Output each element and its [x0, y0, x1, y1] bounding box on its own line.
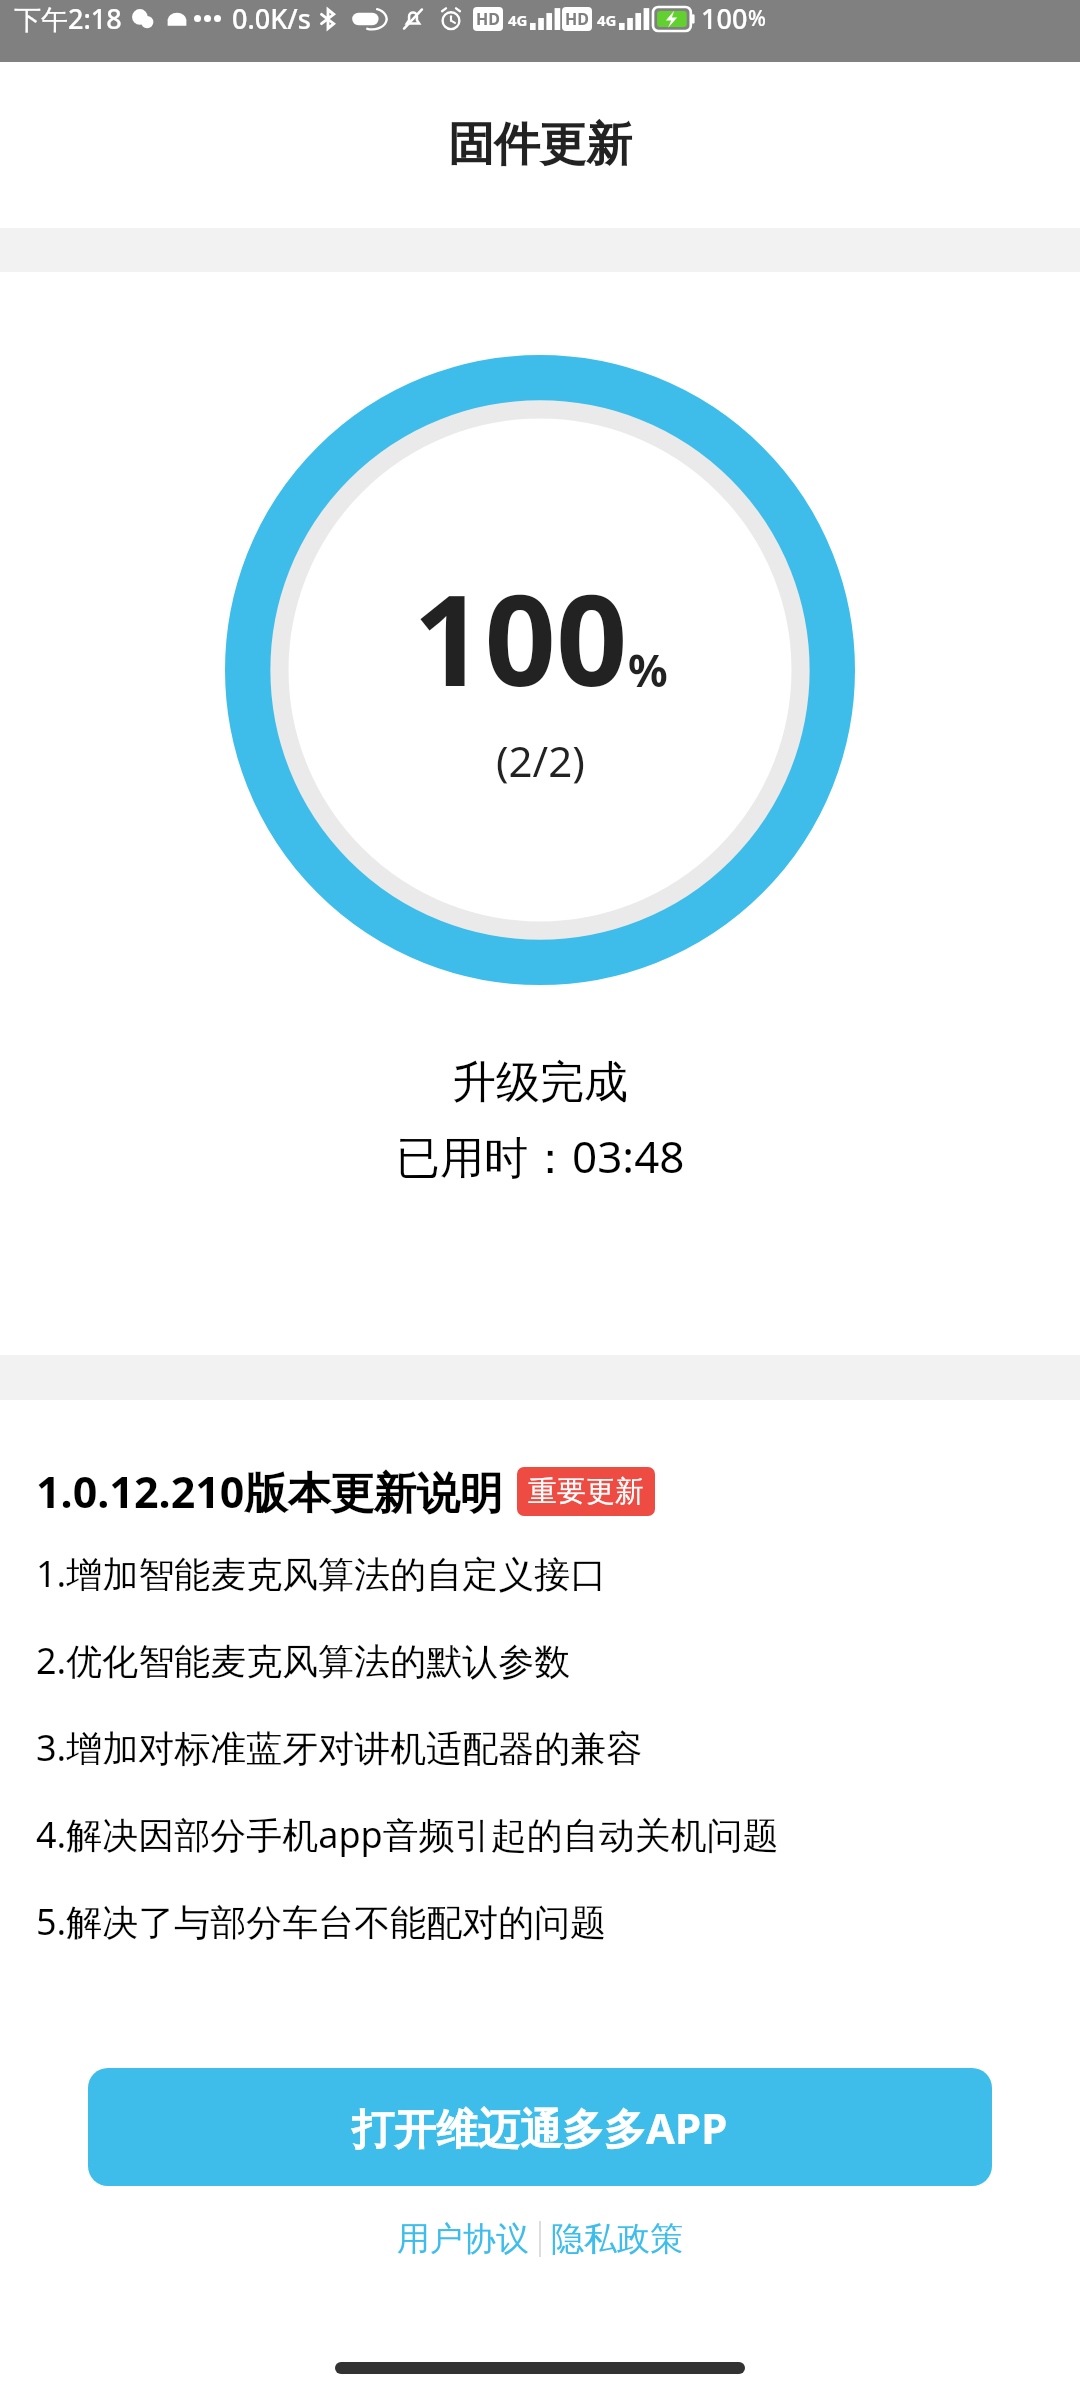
other: Home: [335, 2362, 745, 2374]
button[interactable]: 打开维迈通多多APP: [88, 2068, 992, 2186]
staticText: 100: [701, 0, 748, 37]
staticText: 4G: [508, 10, 528, 30]
staticText: 升级完成: [452, 1055, 628, 1110]
staticText: 5.解决了与部分车台不能配对的问题: [36, 1897, 607, 1946]
staticText: 已用时：03:48: [396, 1126, 685, 1186]
staticText: 0.0K/s: [232, 0, 311, 37]
staticText: HD: [565, 8, 589, 30]
button[interactable]: 隐私政策: [541, 2212, 693, 2266]
staticText: (2/2): [496, 732, 585, 789]
staticText: HD: [476, 8, 500, 30]
staticText: %: [628, 640, 668, 700]
staticText: 3.增加对标准蓝牙对讲机适配器的兼容: [36, 1723, 643, 1772]
staticText: 2.优化智能麦克风算法的默认参数: [36, 1636, 571, 1685]
staticText: 1.增加智能麦克风算法的自定义接口: [36, 1549, 607, 1598]
staticText: 固件更新: [448, 116, 632, 174]
staticText: 打开维迈通多多APP: [352, 2099, 728, 2156]
staticText: 隐私政策: [551, 2218, 683, 2260]
staticText: 100: [413, 552, 628, 722]
staticText: %: [748, 4, 766, 33]
staticText: 4G: [597, 10, 617, 30]
staticText: 1.0.12.210版本更新说明: [36, 1462, 503, 1521]
staticText: 4.解决因部分手机app音频引起的自动关机问题: [36, 1810, 779, 1859]
staticText: 下午2:18: [14, 0, 122, 37]
staticText: 用户协议: [397, 2218, 529, 2260]
staticText: 重要更新: [528, 1473, 644, 1510]
button[interactable]: 用户协议: [387, 2212, 539, 2266]
